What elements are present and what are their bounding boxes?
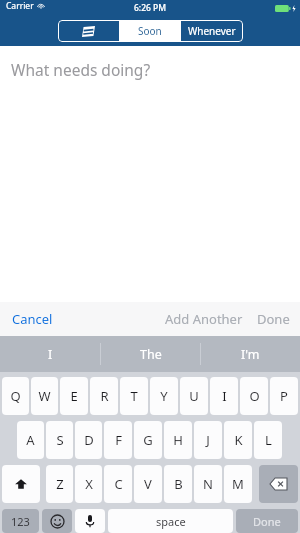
staticText: C	[114, 475, 123, 493]
staticText: Q	[10, 387, 21, 405]
staticText: Done	[257, 310, 290, 328]
button[interactable]: Cancel	[12, 310, 53, 328]
button[interactable]: F	[104, 421, 132, 459]
staticText: space	[156, 514, 186, 529]
staticText: N	[203, 475, 213, 493]
staticText: Cancel	[12, 310, 53, 328]
staticText: Done	[253, 514, 281, 529]
button[interactable]: O	[240, 377, 268, 415]
button[interactable]: U	[180, 377, 208, 415]
staticText: 6:26 PM	[134, 2, 167, 14]
button[interactable]: Soon	[120, 20, 180, 42]
button[interactable]: H	[164, 421, 192, 459]
button[interactable]: Add Another	[165, 310, 243, 328]
staticText: Z	[56, 475, 64, 493]
staticText: What needs doing?	[11, 59, 151, 80]
button[interactable]: T	[120, 377, 148, 415]
button[interactable]: B	[164, 465, 192, 503]
staticText: H	[173, 431, 183, 449]
staticText: I	[222, 387, 227, 405]
staticText: T	[130, 387, 138, 405]
button[interactable]: Dictation	[75, 509, 105, 533]
staticText: Y	[160, 387, 168, 405]
staticText: V	[144, 475, 152, 493]
staticText: R	[100, 387, 109, 405]
staticText: I'm	[241, 346, 260, 363]
button[interactable]: space	[108, 509, 233, 533]
button[interactable]: N	[194, 465, 222, 503]
button[interactable]: I'm	[201, 336, 300, 372]
staticText: P	[280, 387, 288, 405]
button[interactable]: All notes	[58, 20, 119, 42]
button[interactable]: V	[134, 465, 162, 503]
staticText: Whenever	[188, 24, 236, 38]
button[interactable]: I	[210, 377, 238, 415]
staticText: E	[70, 387, 78, 405]
button[interactable]: D	[75, 421, 102, 459]
button[interactable]: Done	[257, 310, 290, 328]
staticText: F	[115, 431, 122, 449]
staticText: W	[38, 387, 51, 405]
staticText: J	[206, 431, 210, 449]
button[interactable]: Emoji	[42, 509, 72, 533]
button[interactable]: E	[60, 377, 88, 415]
staticText: K	[234, 431, 243, 449]
button[interactable]: What needs doing?	[0, 46, 300, 302]
button[interactable]: A	[17, 421, 44, 459]
button[interactable]: I	[0, 336, 100, 372]
staticText: L	[265, 431, 272, 449]
button[interactable]: R	[90, 377, 118, 415]
button[interactable]: W	[31, 377, 58, 415]
staticText: X	[85, 475, 93, 493]
button[interactable]: P	[270, 377, 298, 415]
button[interactable]: M	[224, 465, 252, 503]
staticText: Add Another	[165, 310, 243, 328]
button[interactable]: Shift	[2, 465, 40, 503]
staticText: D	[84, 431, 94, 449]
button[interactable]: 123	[2, 509, 39, 533]
button[interactable]: Done	[236, 509, 298, 533]
staticText: G	[143, 431, 153, 449]
staticText: 123	[11, 514, 30, 529]
staticText: U	[189, 387, 199, 405]
button[interactable]: K	[224, 421, 252, 459]
staticText: Carrier	[6, 0, 34, 12]
button[interactable]: Whenever	[181, 20, 243, 42]
staticText: Soon	[138, 24, 162, 38]
button[interactable]: The	[101, 336, 200, 372]
button[interactable]: X	[75, 465, 102, 503]
staticText: B	[174, 475, 183, 493]
button[interactable]: G	[134, 421, 162, 459]
button[interactable]: C	[104, 465, 132, 503]
staticText: M	[232, 475, 244, 493]
staticText: The	[140, 346, 162, 363]
staticText: A	[26, 431, 35, 449]
button[interactable]: J	[194, 421, 222, 459]
button[interactable]: L	[254, 421, 282, 459]
staticText: I	[48, 346, 53, 363]
button[interactable]: Y	[150, 377, 178, 415]
staticText: O	[249, 387, 260, 405]
staticText: S	[56, 431, 64, 449]
button[interactable]: Backspace	[259, 465, 298, 503]
button[interactable]: Z	[46, 465, 73, 503]
button[interactable]: Q	[2, 377, 29, 415]
button[interactable]: S	[46, 421, 73, 459]
